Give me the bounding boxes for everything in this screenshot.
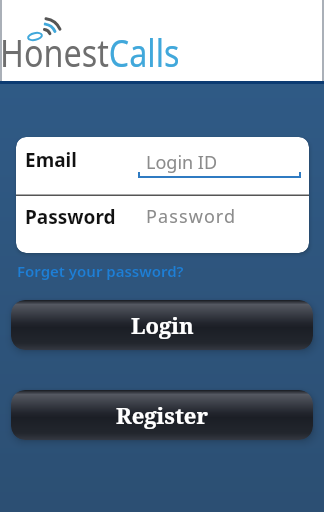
staticText: Calls [109,26,180,78]
staticText: Email [25,147,77,173]
button[interactable]: Forget your password? [17,261,184,281]
staticText: Password [25,204,116,230]
button[interactable]: Register [11,390,313,440]
button[interactable]: Login [11,300,313,350]
button[interactable]: Login ID [136,139,306,193]
button[interactable]: Password [136,197,306,251]
staticText: Register [116,400,208,430]
staticText: Honest [0,26,109,78]
staticText: Login [131,310,194,340]
staticText: Password [146,204,237,229]
staticText: Login ID [146,150,218,175]
